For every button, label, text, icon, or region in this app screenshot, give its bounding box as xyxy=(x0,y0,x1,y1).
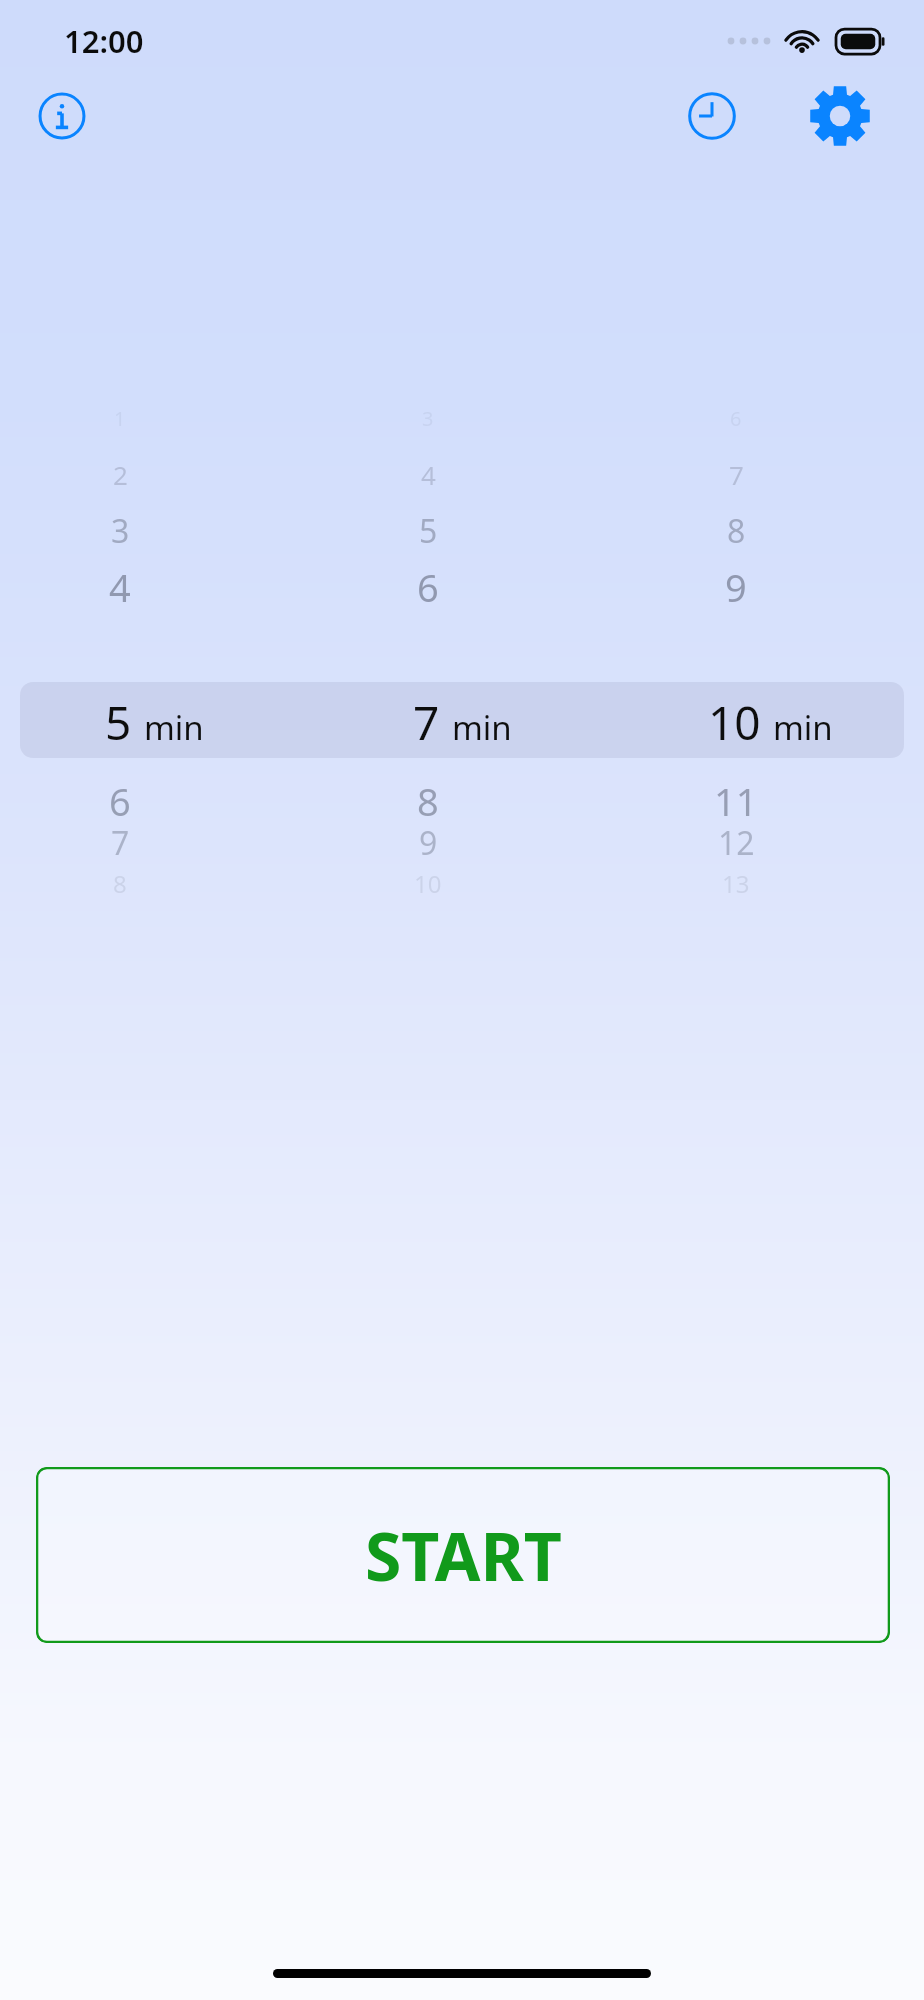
staticText: 4 xyxy=(109,561,131,613)
button[interactable]: History xyxy=(676,80,748,152)
staticText: 9 xyxy=(725,561,747,613)
staticText: 10 xyxy=(414,867,442,900)
staticText: 1 xyxy=(114,405,126,432)
staticText: 8 xyxy=(417,775,439,827)
staticText: 3 xyxy=(111,509,130,553)
staticText: 5 xyxy=(105,691,132,754)
staticText: 2 xyxy=(113,457,128,492)
staticText: 9 xyxy=(419,821,438,865)
staticText: 3 xyxy=(422,405,434,432)
staticText: 6 xyxy=(417,561,439,613)
staticText: min xyxy=(144,705,204,750)
staticText: 7 xyxy=(729,457,744,492)
button[interactable]: 6 xyxy=(616,395,924,735)
staticText: 6 xyxy=(730,405,742,432)
staticText: 12:00 xyxy=(64,20,144,62)
button[interactable]: Settings xyxy=(802,78,878,154)
staticText: 7 xyxy=(413,691,440,754)
button[interactable]: 3 xyxy=(308,395,616,735)
staticText: START xyxy=(365,1510,562,1600)
staticText: 8 xyxy=(113,867,127,900)
staticText: 10 xyxy=(708,691,761,754)
staticText: 5 xyxy=(419,509,438,553)
staticText: min xyxy=(452,705,512,750)
staticText: 13 xyxy=(722,867,750,900)
staticText: 7 xyxy=(111,821,130,865)
staticText: 8 xyxy=(727,509,746,553)
staticText: 6 xyxy=(109,775,131,827)
button[interactable]: 1 xyxy=(0,395,308,735)
button[interactable]: Info xyxy=(26,80,98,152)
staticText: 4 xyxy=(421,457,436,492)
staticText: min xyxy=(773,705,833,750)
button[interactable]: START xyxy=(36,1467,890,1643)
staticText: 11 xyxy=(714,775,758,827)
staticText: 12 xyxy=(718,821,755,865)
